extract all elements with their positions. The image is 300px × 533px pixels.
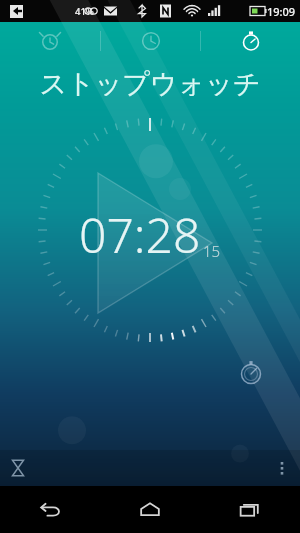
button[interactable]: Back xyxy=(0,486,100,533)
button[interactable]: Timer xyxy=(0,450,36,486)
button[interactable]: Home xyxy=(100,486,200,533)
button[interactable]: Recents xyxy=(200,486,300,533)
staticText: 07:28 xyxy=(79,202,201,267)
staticText: ストップウォッチ xyxy=(39,67,261,101)
button[interactable]: World clock xyxy=(101,22,200,60)
staticText: 15 xyxy=(203,241,221,261)
button[interactable]: More options xyxy=(264,450,300,486)
button[interactable]: Stopwatch xyxy=(201,22,300,60)
staticText: 41% xyxy=(75,5,94,18)
button[interactable]: Alarm xyxy=(0,22,100,60)
staticText: 19:09 xyxy=(267,4,296,19)
